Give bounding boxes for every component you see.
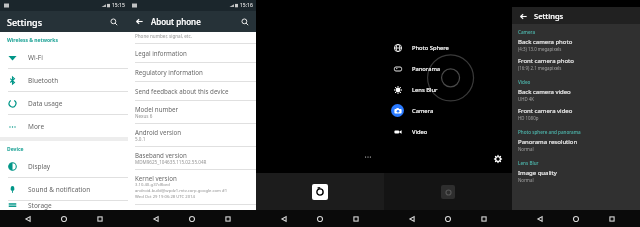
button[interactable]: Recents — [348, 211, 364, 227]
button[interactable]: Front camera video — [512, 105, 640, 124]
staticText: Kernel version — [135, 174, 177, 182]
button[interactable]: Phone number, signal, etc. — [128, 32, 256, 44]
staticText: Storage — [28, 201, 52, 210]
staticText: HD 1080p — [518, 115, 539, 121]
staticText: Phone number, signal, etc. — [135, 33, 192, 39]
staticText: About phone — [151, 16, 201, 27]
button[interactable]: Home — [440, 211, 456, 227]
button[interactable]: Photo Sphere — [384, 37, 512, 58]
button[interactable]: Back — [532, 211, 548, 227]
button[interactable]: Recents — [476, 211, 492, 227]
button[interactable]: Search — [238, 15, 251, 28]
button[interactable]: Panorama — [384, 58, 512, 79]
button[interactable]: Video — [384, 121, 512, 142]
button[interactable]: Settings — [492, 153, 504, 165]
staticText: Back camera video — [518, 88, 571, 96]
button[interactable]: Data usage — [0, 92, 128, 115]
staticText: Settings — [7, 16, 43, 28]
staticText: UHD 4K — [518, 96, 535, 102]
button[interactable]: Back — [517, 10, 529, 22]
button[interactable]: Storage — [0, 201, 128, 210]
staticText: Display — [28, 162, 51, 171]
staticText: Photo sphere and panorama — [518, 129, 581, 135]
button[interactable]: Recents — [92, 211, 108, 227]
button[interactable]: Back — [148, 211, 164, 227]
staticText: Back camera photo — [518, 38, 573, 46]
button[interactable]: Back camera video — [512, 86, 640, 105]
button[interactable]: Regulatory information — [128, 63, 256, 82]
staticText: Photo Sphere — [412, 44, 449, 52]
staticText: android-build@wpdz1.mtv.corp.google.com … — [135, 188, 228, 194]
button[interactable]: Home — [568, 211, 584, 227]
staticText: 15:15 — [112, 2, 125, 9]
button[interactable]: Back camera photo — [512, 36, 640, 55]
staticText: Lens Blur — [518, 160, 539, 166]
button[interactable]: Android version — [128, 124, 256, 147]
staticText: 15:16 — [240, 2, 253, 9]
staticText: Device — [7, 146, 24, 153]
button[interactable]: Back — [276, 211, 292, 227]
staticText: Normal — [518, 146, 534, 152]
staticText: Regulatory information — [135, 68, 203, 76]
staticText: Lens Blur — [412, 86, 438, 94]
button[interactable]: Model number — [128, 101, 256, 124]
button[interactable]: Home — [184, 211, 200, 227]
button[interactable]: More — [0, 115, 128, 137]
button[interactable]: Baseband version — [128, 147, 256, 170]
staticText: Send feedback about this device — [135, 87, 229, 95]
staticText: Normal — [518, 177, 534, 183]
button[interactable]: Recents — [604, 211, 620, 227]
staticText: (4:3) 13.0 megapixels — [518, 46, 562, 52]
staticText: Image quality — [518, 169, 557, 177]
staticText: Video — [518, 79, 531, 85]
staticText: Sound & notification — [28, 185, 91, 194]
staticText: Front camera photo — [518, 57, 574, 65]
staticText: Bluetooth — [28, 76, 59, 85]
staticText: Legal information — [135, 49, 187, 57]
staticText: Wi-Fi — [28, 53, 43, 62]
button[interactable]: Image quality — [512, 167, 640, 186]
staticText: Panorama — [412, 65, 441, 73]
staticText: 5.0.1 — [135, 136, 146, 142]
button[interactable]: Bluetooth — [0, 69, 128, 92]
staticText: MDM9625_104635.115.02.55.04R — [135, 159, 207, 165]
staticText: Settings — [534, 11, 564, 21]
button[interactable]: Back — [404, 211, 420, 227]
button[interactable]: Search — [107, 15, 121, 29]
button[interactable]: Shutter — [312, 184, 328, 200]
button[interactable]: Back — [20, 211, 36, 227]
staticText: Camera — [518, 29, 536, 35]
button[interactable]: Back — [133, 15, 146, 28]
button[interactable]: Legal information — [128, 44, 256, 63]
button[interactable]: More options — [362, 151, 374, 163]
staticText: Data usage — [28, 99, 63, 108]
staticText: Baseband version — [135, 151, 187, 159]
staticText: Android version — [135, 128, 182, 136]
staticText: Wed Oct 29 19:06:28 UTC 2014 — [135, 194, 195, 200]
button[interactable]: Kernel version — [128, 170, 256, 205]
staticText: Camera — [412, 107, 434, 115]
button[interactable]: Display — [0, 155, 128, 178]
button[interactable]: Shutter — [441, 185, 455, 199]
staticText: Panorama resolution — [518, 138, 578, 146]
button[interactable]: Sound & notification — [0, 178, 128, 201]
staticText: Model number — [135, 105, 179, 113]
button[interactable]: Camera — [384, 100, 512, 121]
staticText: 3.10.40-g37c8bed — [135, 182, 170, 188]
button[interactable]: Send feedback about this device — [128, 82, 256, 101]
staticText: Video — [412, 128, 428, 136]
staticText: (16:9) 2.1 megapixels — [518, 65, 562, 71]
staticText: Nexus 6 — [135, 113, 153, 119]
button[interactable]: Wi-Fi — [0, 46, 128, 69]
button[interactable]: Lens Blur — [384, 79, 512, 100]
button[interactable]: Panorama resolution — [512, 136, 640, 155]
button[interactable]: Recents — [220, 211, 236, 227]
button[interactable]: Front camera photo — [512, 55, 640, 74]
staticText: Wireless & networks — [7, 37, 58, 44]
staticText: Front camera video — [518, 107, 573, 115]
staticText: More — [28, 122, 45, 131]
button[interactable]: Home — [312, 211, 328, 227]
button[interactable]: Home — [56, 211, 72, 227]
